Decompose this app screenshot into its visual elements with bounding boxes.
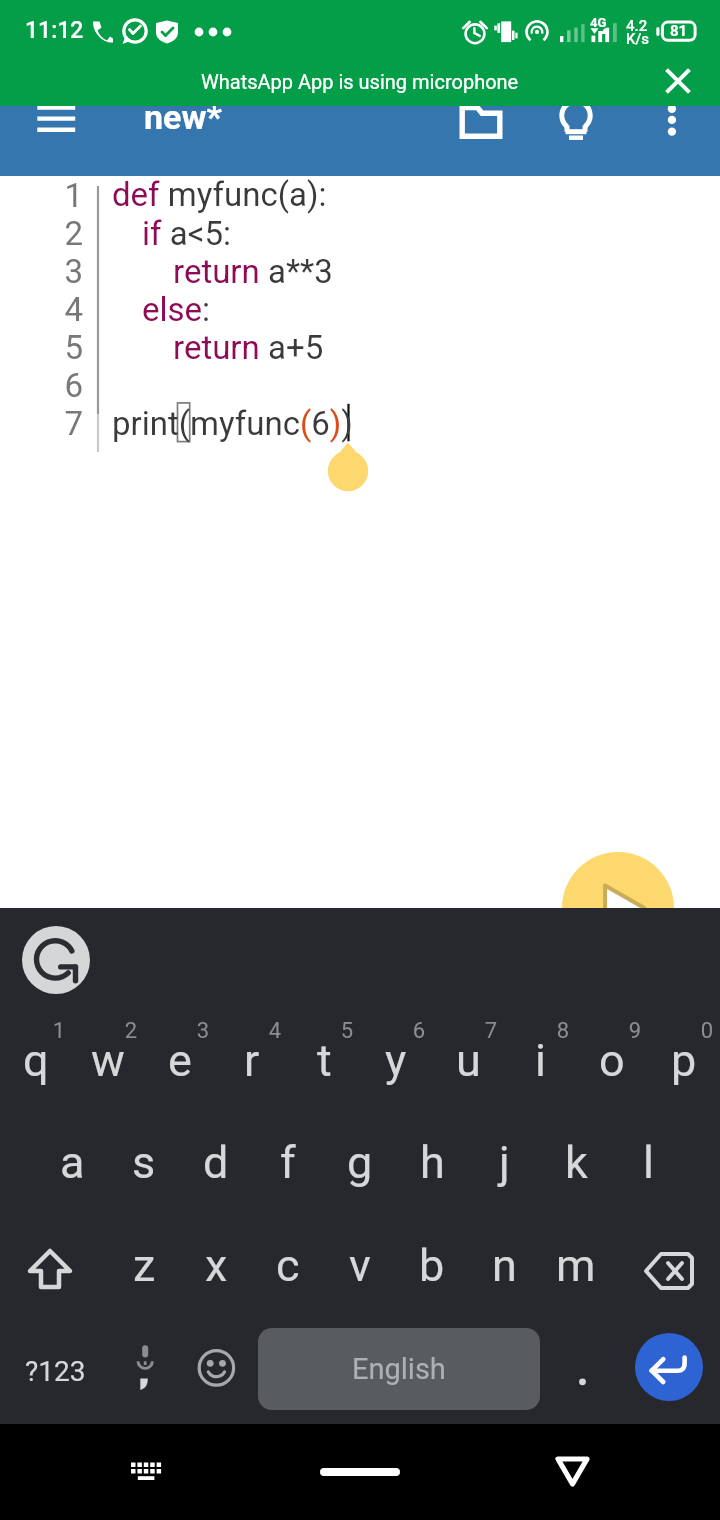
staticText: 1 bbox=[50, 176, 83, 215]
staticText: t bbox=[317, 1034, 332, 1087]
button[interactable]: ?123 bbox=[12, 1328, 98, 1414]
button[interactable]: k bbox=[540, 1117, 612, 1207]
button[interactable]: i bbox=[504, 1015, 576, 1105]
staticText: 4 bbox=[268, 1018, 282, 1044]
staticText: n bbox=[492, 1239, 517, 1292]
staticText: o bbox=[599, 1034, 625, 1087]
staticText: English bbox=[352, 1352, 446, 1386]
staticText: h bbox=[420, 1136, 445, 1189]
staticText: def myfunc(a): bbox=[112, 175, 327, 214]
button[interactable]: z bbox=[108, 1220, 180, 1310]
staticText: r bbox=[244, 1034, 260, 1087]
button[interactable]: Grammarly bbox=[22, 926, 90, 994]
staticText: m bbox=[556, 1239, 596, 1292]
staticText: 4 bbox=[50, 290, 83, 329]
staticText: 2 bbox=[124, 1018, 138, 1044]
button[interactable]: Hide keyboard bbox=[116, 1441, 176, 1501]
button[interactable]: Shift bbox=[8, 1226, 92, 1316]
staticText: s bbox=[132, 1136, 156, 1189]
staticText: c bbox=[276, 1239, 300, 1292]
staticText: y bbox=[385, 1034, 407, 1087]
button[interactable]: o bbox=[576, 1015, 648, 1105]
staticText: 81 bbox=[670, 22, 688, 40]
button[interactable]: Voice input bbox=[111, 1328, 179, 1414]
button[interactable]: Enter bbox=[635, 1333, 703, 1401]
button[interactable]: English bbox=[258, 1328, 540, 1410]
staticText: else: bbox=[142, 290, 211, 329]
staticText: 5 bbox=[340, 1018, 354, 1044]
button[interactable]: g bbox=[324, 1117, 396, 1207]
staticText: p bbox=[671, 1034, 697, 1087]
staticText: 3 bbox=[50, 252, 83, 291]
staticText: 6 bbox=[412, 1018, 426, 1044]
button[interactable]: t bbox=[288, 1015, 360, 1105]
staticText: return a**3 bbox=[173, 252, 333, 291]
staticText: return a+5 bbox=[173, 328, 324, 367]
button[interactable]: a bbox=[36, 1117, 108, 1207]
staticText: WhatsApp App is using microphone bbox=[201, 70, 519, 93]
button[interactable]: h bbox=[396, 1117, 468, 1207]
staticText: 7 bbox=[50, 404, 83, 443]
staticText: print(myfunc(6)) bbox=[112, 404, 353, 443]
staticText: g bbox=[347, 1136, 373, 1189]
staticText: new* bbox=[144, 97, 222, 137]
staticText: 0 bbox=[700, 1018, 714, 1044]
button[interactable]: e bbox=[144, 1015, 216, 1105]
button[interactable]: w bbox=[72, 1015, 144, 1105]
button[interactable]: n bbox=[468, 1220, 540, 1310]
button[interactable]: Navigation menu bbox=[20, 92, 92, 162]
staticText: f bbox=[280, 1136, 296, 1189]
staticText: w bbox=[91, 1034, 125, 1087]
staticText: v bbox=[349, 1239, 371, 1292]
staticText: u bbox=[456, 1034, 481, 1087]
button[interactable]: Period bbox=[552, 1328, 614, 1414]
button[interactable]: Emoji bbox=[182, 1328, 250, 1414]
staticText: 2 bbox=[50, 214, 83, 253]
staticText: if a<5: bbox=[142, 214, 231, 253]
button[interactable]: m bbox=[540, 1220, 612, 1310]
button[interactable]: j bbox=[468, 1117, 540, 1207]
staticText: 5 bbox=[50, 328, 83, 367]
staticText: 1 bbox=[52, 1018, 66, 1044]
staticText: 6 bbox=[50, 366, 83, 405]
staticText: 4.2 bbox=[626, 17, 648, 35]
staticText: k bbox=[565, 1136, 588, 1189]
staticText: d bbox=[203, 1136, 229, 1189]
staticText: 9 bbox=[628, 1018, 642, 1044]
staticText: 3 bbox=[196, 1018, 210, 1044]
button[interactable]: Home bbox=[320, 1468, 400, 1476]
button[interactable]: l bbox=[612, 1117, 684, 1207]
staticText: 11:12 bbox=[25, 17, 84, 44]
staticText: j bbox=[499, 1136, 510, 1189]
button[interactable]: Run bbox=[562, 852, 674, 964]
button[interactable]: Backspace bbox=[627, 1226, 711, 1316]
staticText: q bbox=[23, 1034, 49, 1087]
staticText: ?123 bbox=[25, 1355, 86, 1388]
staticText: z bbox=[133, 1239, 156, 1292]
button[interactable]: u bbox=[432, 1015, 504, 1105]
staticText: i bbox=[535, 1034, 546, 1087]
button[interactable]: Open file bbox=[450, 94, 512, 156]
button[interactable]: v bbox=[324, 1220, 396, 1310]
button[interactable]: b bbox=[396, 1220, 468, 1310]
button[interactable]: Hints bbox=[550, 94, 606, 150]
staticText: l bbox=[643, 1136, 654, 1189]
button[interactable]: s bbox=[108, 1117, 180, 1207]
staticText: K/s bbox=[626, 30, 650, 48]
button[interactable]: c bbox=[252, 1220, 324, 1310]
button[interactable]: y bbox=[360, 1015, 432, 1105]
button[interactable]: q bbox=[0, 1015, 72, 1105]
staticText: 8 bbox=[556, 1018, 570, 1044]
staticText: 4G bbox=[590, 15, 607, 30]
button[interactable]: Dismiss bbox=[656, 59, 700, 103]
button[interactable]: x bbox=[180, 1220, 252, 1310]
button[interactable]: p bbox=[648, 1015, 720, 1105]
button[interactable]: More options bbox=[652, 92, 692, 132]
staticText: x bbox=[205, 1239, 228, 1292]
button[interactable]: r bbox=[216, 1015, 288, 1105]
staticText: 7 bbox=[484, 1018, 498, 1044]
button[interactable]: Back bbox=[543, 1436, 603, 1496]
button[interactable]: f bbox=[252, 1117, 324, 1207]
staticText: e bbox=[168, 1034, 192, 1087]
button[interactable]: d bbox=[180, 1117, 252, 1207]
